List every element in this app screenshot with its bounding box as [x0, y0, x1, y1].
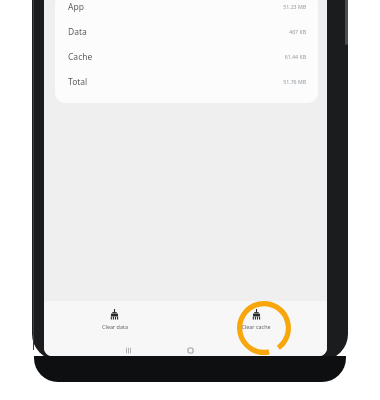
staticText: Data	[68, 26, 87, 38]
staticText: 467 KB	[289, 28, 306, 35]
staticText: 61.44 KB	[284, 53, 306, 60]
other: Highlight Clear cache	[237, 301, 291, 355]
staticText: Total	[68, 76, 88, 88]
staticText: Clear cache	[241, 323, 271, 330]
button[interactable]: Total	[55, 69, 318, 94]
staticText: 51.76 MB	[283, 78, 306, 85]
button[interactable]: Cache	[55, 44, 318, 69]
staticText: 51.23 MB	[283, 3, 306, 10]
staticText: App	[68, 1, 84, 13]
button[interactable]: Data	[55, 19, 318, 44]
button[interactable]: Clear data	[44, 301, 185, 345]
button[interactable]: Clear cache	[185, 301, 327, 345]
staticText: Clear data	[102, 323, 128, 330]
button[interactable]: App	[55, 0, 318, 19]
staticText: Cache	[68, 51, 93, 63]
